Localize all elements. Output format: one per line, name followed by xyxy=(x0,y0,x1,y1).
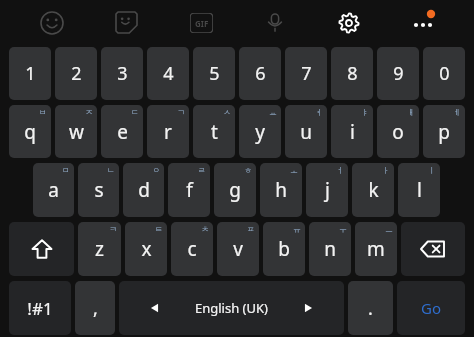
staticText: ㅇ xyxy=(152,165,160,175)
staticText: , xyxy=(93,296,98,321)
staticText: ㅊ xyxy=(201,224,209,234)
staticText: ㅅ xyxy=(223,107,231,117)
staticText: ㄹ xyxy=(198,165,206,175)
staticText: w xyxy=(69,119,84,145)
button[interactable]: o xyxy=(377,105,419,158)
button[interactable]: b xyxy=(263,222,305,276)
staticText: p xyxy=(438,119,450,145)
staticText: ㄱ xyxy=(177,107,185,117)
staticText: d xyxy=(138,177,150,203)
button[interactable]: 2 xyxy=(55,47,97,100)
button[interactable]: 1 xyxy=(9,47,51,100)
staticText: ㅌ xyxy=(155,224,163,234)
staticText: i xyxy=(350,119,355,145)
button[interactable]: a xyxy=(33,163,74,217)
button[interactable]: d xyxy=(123,163,164,217)
staticText: 8 xyxy=(347,61,358,86)
staticText: t xyxy=(211,119,218,145)
staticText: x xyxy=(141,236,152,262)
staticText: h xyxy=(275,177,287,203)
button[interactable]: English (UK) xyxy=(119,281,344,335)
staticText: !#1 xyxy=(27,297,53,320)
staticText: Go xyxy=(421,298,441,318)
staticText: m xyxy=(367,236,385,262)
button[interactable]: s xyxy=(78,163,119,217)
button[interactable]: e xyxy=(101,105,143,158)
button[interactable]: 5 xyxy=(193,47,235,100)
staticText: a xyxy=(48,177,59,203)
staticText: s xyxy=(94,177,104,203)
button[interactable]: x xyxy=(125,222,167,276)
button[interactable]: , xyxy=(75,281,115,335)
button[interactable]: k xyxy=(352,163,394,217)
staticText: e xyxy=(117,119,128,145)
staticText: 7 xyxy=(301,61,312,86)
button[interactable]: Voice input xyxy=(238,0,312,45)
button[interactable]: j xyxy=(306,163,348,217)
button[interactable]: q xyxy=(9,105,51,158)
staticText: ㅎ xyxy=(244,165,252,175)
button[interactable]: !#1 xyxy=(9,281,71,335)
staticText: 4 xyxy=(163,61,174,86)
button[interactable]: More options xyxy=(386,0,460,45)
staticText: j xyxy=(325,177,330,203)
button[interactable]: t xyxy=(193,105,235,158)
button[interactable]: n xyxy=(309,222,351,276)
button[interactable]: Stickers xyxy=(89,0,164,45)
button[interactable]: 4 xyxy=(147,47,189,100)
button[interactable]: Shift xyxy=(9,222,74,276)
staticText: l xyxy=(417,177,422,203)
button[interactable]: l xyxy=(398,163,440,217)
button[interactable]: v xyxy=(217,222,259,276)
staticText: 1 xyxy=(25,61,36,86)
button[interactable]: m xyxy=(355,222,397,276)
staticText: g xyxy=(229,177,241,203)
staticText: b xyxy=(278,236,290,262)
staticText: 5 xyxy=(209,61,220,86)
button[interactable]: u xyxy=(285,105,327,158)
button[interactable]: 8 xyxy=(331,47,373,100)
button[interactable]: GIF xyxy=(164,0,238,45)
staticText: k xyxy=(368,177,379,203)
staticText: ㅕ xyxy=(315,107,323,117)
staticText: . xyxy=(368,296,373,321)
staticText: c xyxy=(187,236,197,262)
button[interactable]: g xyxy=(214,163,256,217)
staticText: 9 xyxy=(393,61,404,86)
button[interactable]: Go xyxy=(397,281,465,335)
button[interactable]: p xyxy=(423,105,465,158)
button[interactable]: Settings xyxy=(312,0,386,45)
staticText: z xyxy=(95,236,104,262)
button[interactable]: 0 xyxy=(423,47,465,100)
staticText: ㄷ xyxy=(131,107,139,117)
staticText: GIF xyxy=(195,18,209,29)
button[interactable]: Backspace xyxy=(401,222,465,276)
staticText: y xyxy=(255,119,265,145)
staticText: 6 xyxy=(255,61,266,86)
button[interactable]: c xyxy=(171,222,213,276)
staticText: 2 xyxy=(71,61,82,86)
staticText: ㄴ xyxy=(107,165,115,175)
button[interactable]: i xyxy=(331,105,373,158)
button[interactable]: 6 xyxy=(239,47,281,100)
button[interactable]: . xyxy=(348,281,393,335)
button[interactable]: z xyxy=(78,222,121,276)
button[interactable]: f xyxy=(168,163,210,217)
staticText: ㅣ xyxy=(428,165,436,175)
staticText: ㅡ xyxy=(385,224,393,234)
staticText: ㅂ xyxy=(39,107,47,117)
button[interactable]: r xyxy=(147,105,189,158)
staticText: ㅋ xyxy=(109,224,117,234)
button[interactable]: 3 xyxy=(101,47,143,100)
button[interactable]: h xyxy=(260,163,302,217)
button[interactable]: 7 xyxy=(285,47,327,100)
staticText: n xyxy=(324,236,336,262)
button[interactable]: y xyxy=(239,105,281,158)
staticText: English (UK) xyxy=(195,299,268,317)
staticText: o xyxy=(392,119,404,145)
button[interactable]: 9 xyxy=(377,47,419,100)
staticText: ㅐ xyxy=(407,107,415,117)
button[interactable]: Emoji xyxy=(14,0,89,45)
button[interactable]: w xyxy=(55,105,97,158)
staticText: ㅔ xyxy=(453,107,461,117)
